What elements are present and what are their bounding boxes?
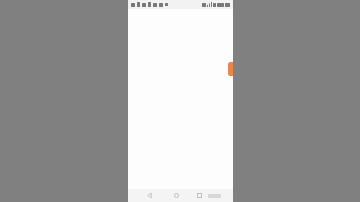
button[interactable]: Recents	[194, 189, 204, 202]
button[interactable]: Back	[140, 189, 158, 202]
button[interactable]: Home	[167, 189, 185, 202]
button[interactable]: Open side panel	[228, 62, 233, 76]
